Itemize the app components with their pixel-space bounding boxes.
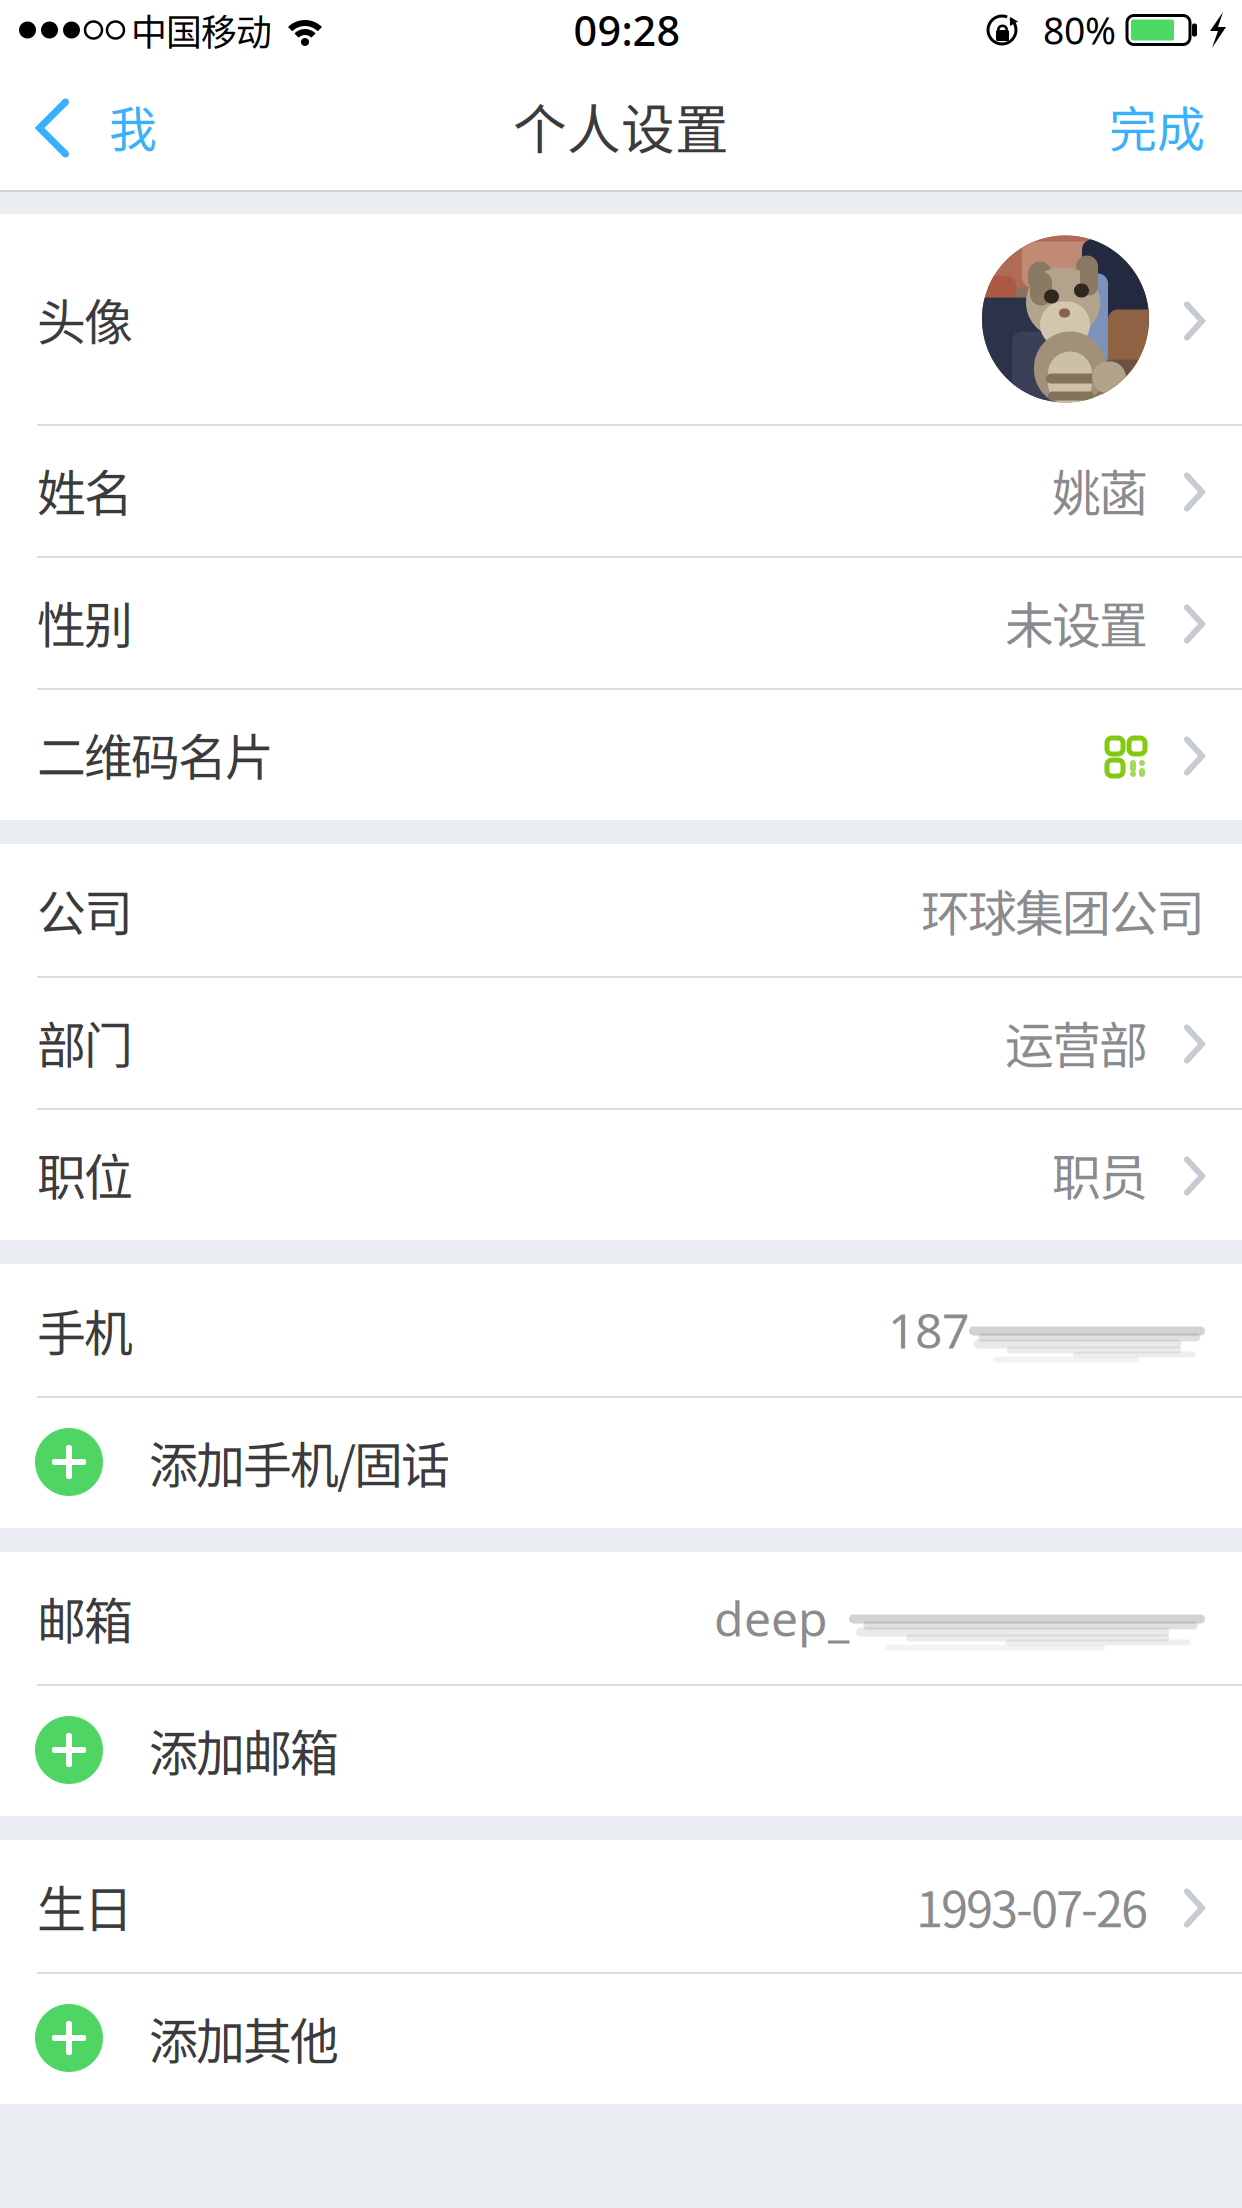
staticText: 中国移动 [131,4,272,56]
staticText: 未设置 [1005,587,1148,657]
button[interactable]: 完成 [1022,60,1242,192]
button[interactable]: 添加其他 [0,1972,1242,2104]
staticText: 09:28 [573,3,680,57]
staticText: 添加邮箱 [149,1715,339,1785]
button[interactable]: 生日 [0,1840,1242,1972]
button[interactable]: 手机 [0,1264,1242,1396]
button[interactable]: 邮箱 [0,1552,1242,1684]
staticText: 姓名 [37,455,133,525]
staticText: 生日 [37,1871,133,1941]
staticText: 手机 [37,1295,133,1365]
staticText: 添加手机/固话 [149,1427,450,1497]
staticText: 部门 [37,1007,133,1077]
staticText: 性别 [37,587,133,657]
button[interactable]: 职位 [0,1108,1242,1240]
staticText: 80% [1043,5,1116,55]
staticText: 1993-07-26 [916,1871,1148,1941]
staticText: 完成 [1109,91,1205,161]
button[interactable]: 我 [0,60,260,192]
button[interactable]: 性别 [0,556,1242,688]
staticText: 邮箱 [37,1583,133,1653]
staticText: 个人设置 [513,87,729,165]
button[interactable]: 头像 [0,214,1242,424]
staticText: 公司 [37,875,133,945]
button[interactable]: 添加邮箱 [0,1684,1242,1816]
staticText: 添加其他 [149,2003,339,2073]
staticText: deep_ [714,1586,849,1650]
button[interactable]: 添加手机/固话 [0,1396,1242,1528]
staticText: 头像 [37,284,133,354]
button[interactable]: 二维码名片 [0,688,1242,820]
button[interactable]: 公司 [0,844,1242,976]
staticText: 环球集团公司 [921,875,1205,945]
staticText: 187 [888,1298,969,1362]
button[interactable]: 部门 [0,976,1242,1108]
staticText: 二维码名片 [37,719,274,789]
button[interactable]: 姓名 [0,424,1242,556]
staticText: 我 [109,91,157,161]
staticText: 姚菡 [1052,455,1148,525]
staticText: 运营部 [1005,1007,1148,1077]
staticText: 职位 [37,1139,133,1209]
staticText: 职员 [1052,1139,1148,1209]
